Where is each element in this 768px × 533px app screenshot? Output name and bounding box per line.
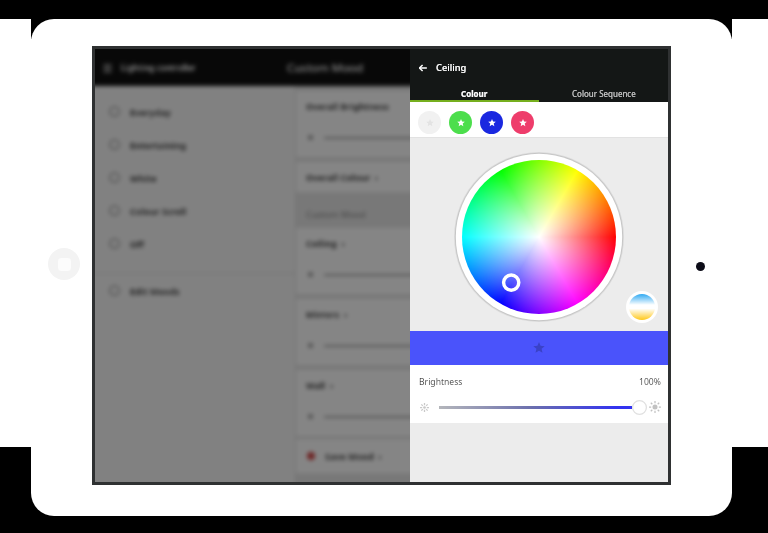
button[interactable]: White [95,161,295,194]
button[interactable]: Mirrors › [296,299,668,365]
button[interactable]: Colour preset [480,111,503,134]
staticText: Everyday [130,106,171,118]
staticText: Save Mood › [325,450,382,462]
staticText: Wall › [306,379,334,391]
button[interactable]: Colour [410,86,539,100]
staticText: Off [130,238,145,250]
staticText: Custom Mood [306,208,366,220]
staticText: Colour [461,88,488,99]
staticText: Colour Scroll [130,205,187,217]
button[interactable]: Save Mood › [296,439,668,473]
button[interactable]: Selected colour [410,331,668,365]
button[interactable]: Colour Scroll [95,194,295,227]
button[interactable]: Edit Moods [95,274,295,307]
button[interactable]: Entertaining [95,128,295,161]
button[interactable]: Home [48,248,80,280]
staticText: Overall Colour › [306,171,379,183]
button[interactable]: Wall › [296,370,668,436]
staticText: Entertaining [130,139,187,151]
staticText: Mirrors › [306,308,348,320]
staticText: 100% [639,376,661,388]
button[interactable]: Overall Colour › [296,162,668,192]
button[interactable]: Colour preset [449,111,472,134]
button[interactable]: Colour preset [418,111,441,134]
staticText: Ceiling [436,61,467,74]
staticText: Brightness [419,376,463,388]
staticText: Lighting controller [121,62,196,74]
button[interactable]: Overall Brightness [296,91,668,157]
staticText: Ceiling › [306,237,345,249]
button[interactable]: Ceiling › [296,228,668,294]
button[interactable]: Colour preset [511,111,534,134]
button[interactable]: Colour temperature [626,291,658,323]
button[interactable]: Back [411,56,434,79]
staticText: White [130,172,157,184]
staticText: Edit Moods [130,285,180,297]
button[interactable]: Colour Sequence [539,86,668,100]
staticText: Overall Brightness [306,100,389,112]
button[interactable]: Off [95,227,295,260]
button[interactable]: Everyday [95,95,295,128]
staticText: Custom Mood [287,60,364,76]
staticText: Colour Sequence [572,88,636,99]
